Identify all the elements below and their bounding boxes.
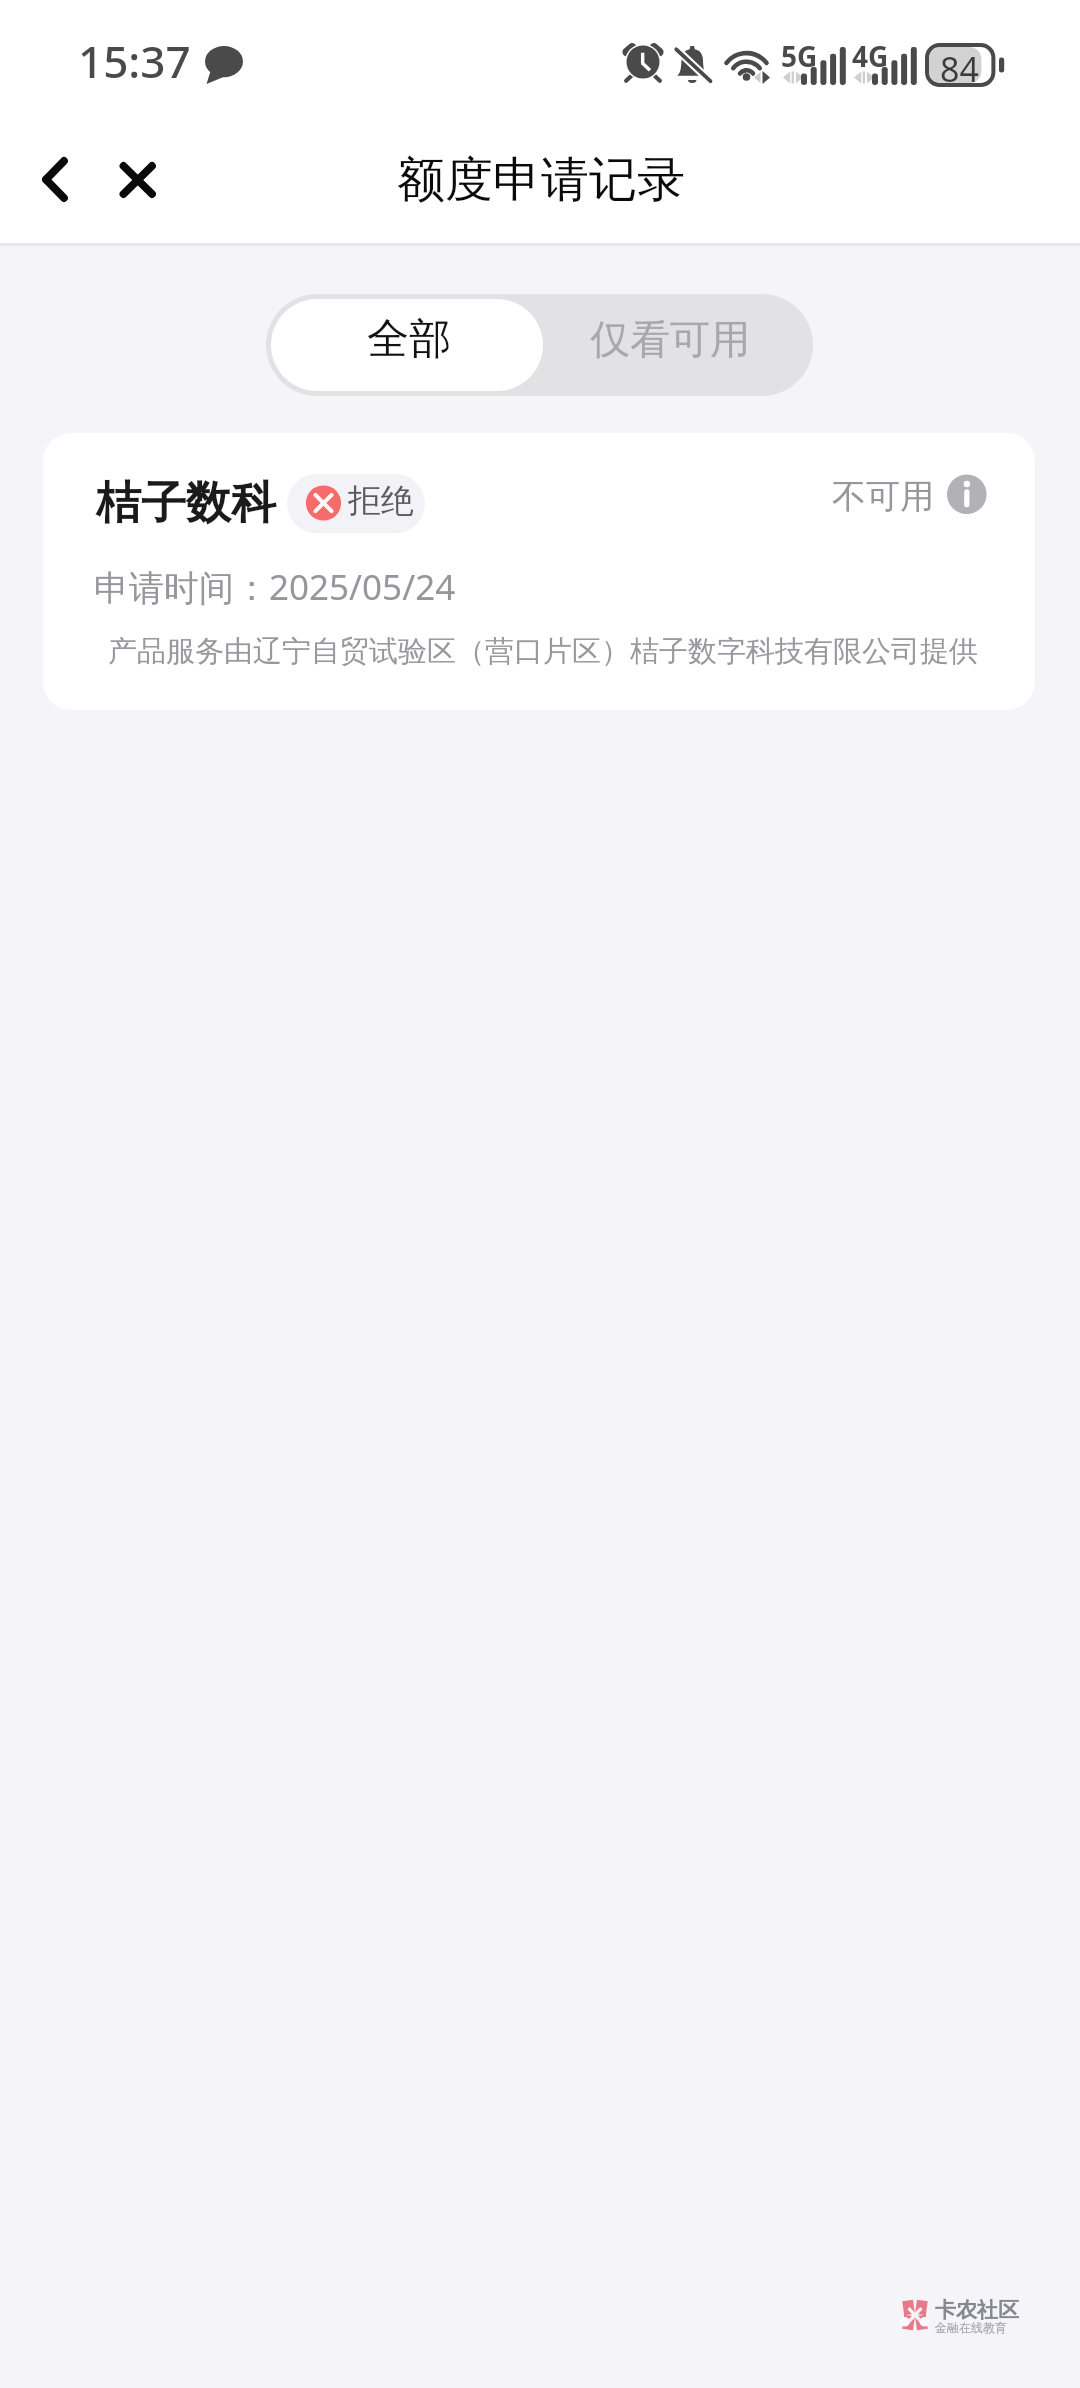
staticText: 拒绝 (348, 480, 414, 522)
button[interactable]: 全部 (271, 299, 543, 391)
staticText: 桔子数科 (96, 475, 276, 532)
staticText: 15:37 (78, 31, 191, 91)
staticText: 84 (940, 46, 979, 86)
button[interactable]: 拒绝 (287, 474, 425, 533)
staticText: 仅看可用 (590, 314, 750, 364)
staticText: 卡农社区 (935, 2297, 1019, 2323)
button[interactable]: 仅看可用 (540, 294, 813, 396)
staticText: 产品服务由辽宁自贸试验区（营口片区）桔子数字科技有限公司提供 (108, 633, 978, 670)
staticText: 额度申请记录 (397, 150, 685, 210)
button[interactable]: Close (100, 144, 172, 216)
staticText: 金融在线教育 (935, 2320, 1007, 2335)
staticText: 申请时间：2025/05/24 (94, 563, 456, 611)
staticText: 全部 (367, 313, 451, 366)
button[interactable]: 桔子数科 (43, 433, 1035, 710)
staticText: 不可用 (832, 475, 934, 518)
button[interactable]: Info (947, 474, 987, 514)
staticText: 4G (852, 37, 889, 75)
staticText: 5G (781, 37, 818, 75)
button[interactable]: Back (18, 144, 90, 216)
